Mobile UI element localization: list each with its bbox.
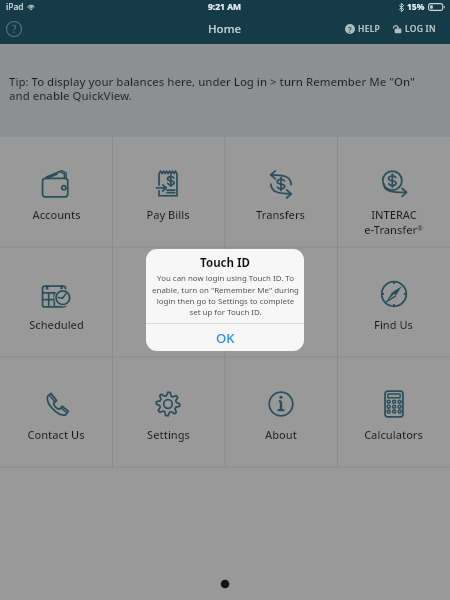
button[interactable] [224, 247, 337, 357]
staticText: Find Us [374, 317, 413, 332]
staticText: e-Transfer® [364, 222, 423, 237]
staticText: INTERAC [371, 207, 417, 222]
button[interactable]: Help [3, 18, 25, 40]
staticText: ? [12, 22, 17, 36]
staticText: Touch ID [200, 255, 250, 271]
button[interactable]: About [224, 357, 337, 467]
staticText: Tip: To display your balances here, unde… [9, 74, 415, 103]
staticText: Transfers [256, 207, 305, 222]
button[interactable]: Calculators [337, 357, 450, 467]
staticText: Settings [147, 427, 190, 442]
button[interactable]: OK [146, 324, 304, 351]
button[interactable]: Accounts [0, 137, 112, 247]
button[interactable]: ? [344, 19, 382, 39]
staticText: LOG IN [405, 23, 436, 35]
staticText: Accounts [32, 207, 81, 222]
staticText: Calculators [364, 427, 423, 442]
staticText: Pay Bills [146, 207, 190, 222]
staticText: 15% [407, 1, 425, 13]
button[interactable]: Settings [112, 357, 224, 467]
staticText: iPad [6, 1, 24, 13]
staticText: OK [216, 329, 235, 347]
staticText: Scheduled [29, 317, 84, 332]
button[interactable]: INTERAC [337, 137, 450, 247]
staticText: Home [208, 21, 242, 37]
staticText: About [265, 427, 297, 442]
staticText: HELP [358, 23, 381, 35]
button[interactable]: Contact Us [0, 357, 112, 467]
staticText: You can now login using Touch ID. To ena… [152, 273, 299, 317]
button[interactable]: Transfers [224, 137, 337, 247]
button[interactable] [112, 247, 224, 357]
staticText: ? [348, 24, 352, 34]
button[interactable]: LOG IN [393, 19, 437, 39]
button[interactable]: Pay Bills [112, 137, 224, 247]
button[interactable]: Scheduled [0, 247, 112, 357]
staticText: Contact Us [27, 427, 85, 442]
button[interactable]: Find Us [337, 247, 450, 357]
staticText: 9:21 AM [208, 1, 242, 13]
